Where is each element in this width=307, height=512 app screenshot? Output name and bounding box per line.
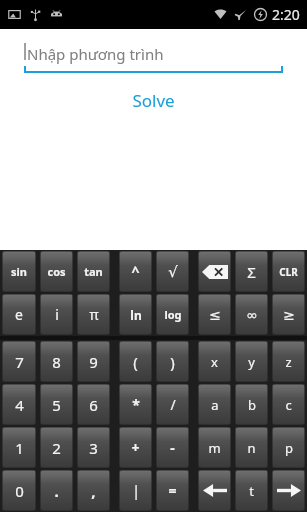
button[interactable]: tan [77, 251, 110, 292]
button[interactable]: 9 [77, 341, 110, 382]
staticText: cos [47, 264, 66, 279]
button[interactable]: CLR [272, 251, 305, 292]
staticText: / [170, 395, 176, 414]
staticText: Σ [247, 262, 256, 282]
staticText: 8 [52, 352, 61, 372]
button[interactable]: b [235, 384, 268, 425]
button[interactable]: * [119, 384, 152, 425]
button[interactable]: - [156, 427, 189, 468]
button[interactable]: cos [40, 251, 73, 292]
staticText: ≥ [283, 307, 295, 323]
button[interactable]: ≥ [272, 294, 305, 335]
button[interactable]: 6 [77, 384, 110, 425]
staticText: 1 [15, 438, 24, 458]
staticText: 0 [15, 481, 24, 501]
staticText: * [132, 395, 140, 414]
button[interactable]: Σ [235, 251, 268, 292]
button[interactable]: m [198, 427, 231, 468]
button[interactable]: , [77, 470, 110, 511]
button[interactable]: = [156, 470, 189, 511]
button[interactable]: + [119, 427, 152, 468]
staticText: , [91, 481, 96, 501]
button[interactable]: 8 [40, 341, 73, 382]
button[interactable]: √ [156, 251, 189, 292]
button[interactable]: z [272, 341, 305, 382]
staticText: tan [84, 264, 103, 279]
staticText: CLR [279, 265, 298, 279]
staticText: 9 [89, 352, 98, 372]
staticText: sin [11, 264, 27, 279]
button[interactable]: ( [119, 341, 152, 382]
button[interactable]: 0 [2, 470, 36, 511]
staticText: ^ [131, 262, 140, 281]
staticText: - [170, 438, 175, 457]
staticText: 2 [52, 438, 61, 458]
button[interactable]: p [272, 427, 305, 468]
staticText: c [285, 396, 292, 414]
staticText: ( [133, 352, 138, 372]
button[interactable]: t [235, 470, 268, 511]
button[interactable]: 4 [2, 384, 36, 425]
button[interactable]: ∞ [235, 294, 268, 335]
staticText: 6 [89, 395, 98, 415]
button[interactable]: x [198, 341, 231, 382]
staticText: ≤ [209, 307, 221, 323]
button[interactable]: 2 [40, 427, 73, 468]
staticText: ln [130, 307, 142, 323]
staticText: y [248, 353, 255, 371]
staticText: ) [170, 352, 175, 372]
staticText: 7 [15, 352, 24, 372]
button[interactable]: π [77, 294, 110, 335]
button[interactable]: | [119, 470, 152, 511]
button[interactable]: 3 [77, 427, 110, 468]
staticText: Solve [132, 89, 175, 112]
button[interactable]: Nhập phương trình [24, 43, 283, 74]
staticText: t [249, 482, 254, 500]
staticText: | [132, 481, 140, 500]
button[interactable]: Move left [198, 470, 231, 511]
staticText: π [89, 305, 99, 324]
staticText: 2:20 [272, 5, 300, 24]
button[interactable]: n [235, 427, 268, 468]
button[interactable]: Move right [272, 470, 305, 511]
staticText: 5 [52, 395, 61, 415]
button[interactable]: Solve [118, 86, 189, 115]
button[interactable]: Backspace [198, 251, 231, 292]
button[interactable]: 7 [2, 341, 36, 382]
staticText: √ [168, 263, 178, 280]
staticText: a [211, 396, 219, 414]
staticText: e [15, 305, 23, 324]
staticText: x [211, 353, 218, 371]
staticText: Nhập phương trình [27, 44, 164, 64]
staticText: log [164, 307, 182, 322]
staticText: = [168, 481, 177, 500]
staticText: 4 [15, 395, 24, 415]
button[interactable]: / [156, 384, 189, 425]
staticText: . [54, 481, 59, 501]
button[interactable]: . [40, 470, 73, 511]
staticText: n [247, 439, 256, 457]
staticText: p [285, 439, 293, 457]
button[interactable]: e [2, 294, 36, 335]
staticText: i [55, 305, 59, 324]
button[interactable]: y [235, 341, 268, 382]
button[interactable]: sin [2, 251, 36, 292]
staticText: m [208, 439, 221, 457]
button[interactable]: c [272, 384, 305, 425]
button[interactable]: 1 [2, 427, 36, 468]
staticText: z [285, 353, 292, 371]
staticText: ∞ [246, 307, 258, 323]
button[interactable]: ≤ [198, 294, 231, 335]
button[interactable]: i [40, 294, 73, 335]
button[interactable]: 5 [40, 384, 73, 425]
button[interactable]: ln [119, 294, 152, 335]
staticText: + [131, 438, 140, 457]
button[interactable]: log [156, 294, 189, 335]
button[interactable]: a [198, 384, 231, 425]
staticText: 3 [89, 438, 98, 458]
button[interactable]: ^ [119, 251, 152, 292]
staticText: b [248, 396, 256, 414]
button[interactable]: ) [156, 341, 189, 382]
